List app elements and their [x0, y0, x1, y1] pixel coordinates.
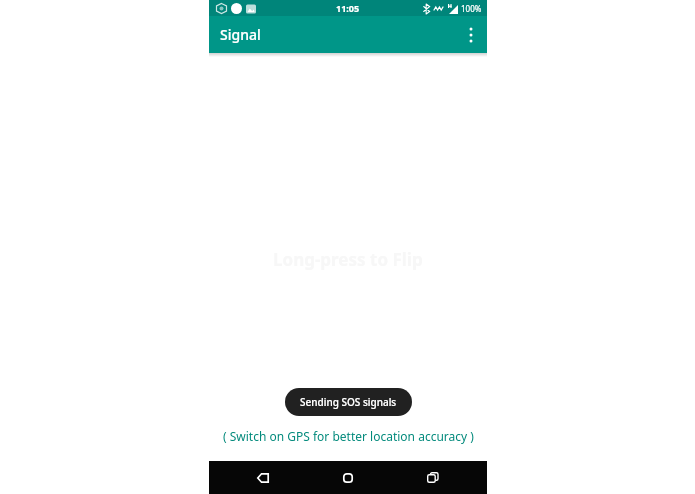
button[interactable] [411, 461, 455, 494]
staticText: 100% [461, 3, 482, 14]
staticText: Sending SOS signals [300, 395, 397, 409]
staticText: Signal [220, 25, 261, 44]
button[interactable]: ( Switch on GPS for better location accu… [223, 428, 474, 444]
button[interactable]: Sending SOS signals [285, 388, 412, 416]
button[interactable] [326, 461, 370, 494]
button[interactable] [241, 461, 285, 494]
button[interactable] [455, 16, 487, 53]
staticText: 11:05 [336, 2, 360, 14]
staticText: Long-press to Flip [273, 248, 423, 271]
